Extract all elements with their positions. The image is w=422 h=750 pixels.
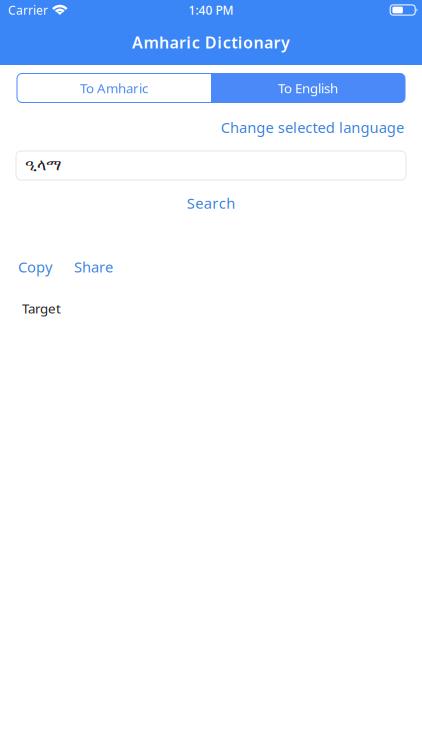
- staticText: To Amharic: [80, 79, 148, 97]
- button[interactable]: To Amharic: [17, 73, 211, 102]
- button[interactable]: Share: [74, 257, 113, 276]
- button[interactable]: Search: [0, 193, 422, 213]
- staticText: Change selected language: [221, 117, 404, 137]
- staticText: Copy: [18, 257, 52, 276]
- button[interactable]: Copy: [18, 257, 52, 276]
- staticText: Carrier: [8, 2, 48, 18]
- staticText: ዒላማ: [25, 158, 61, 173]
- staticText: Amharic Dictionary: [132, 32, 290, 53]
- staticText: Target: [22, 299, 61, 317]
- button[interactable]: Change selected language: [221, 117, 404, 137]
- button[interactable]: To English: [211, 73, 405, 102]
- staticText: Share: [74, 257, 113, 276]
- staticText: 1:40 PM: [188, 2, 233, 18]
- staticText: To English: [278, 79, 338, 97]
- staticText: Search: [187, 193, 235, 213]
